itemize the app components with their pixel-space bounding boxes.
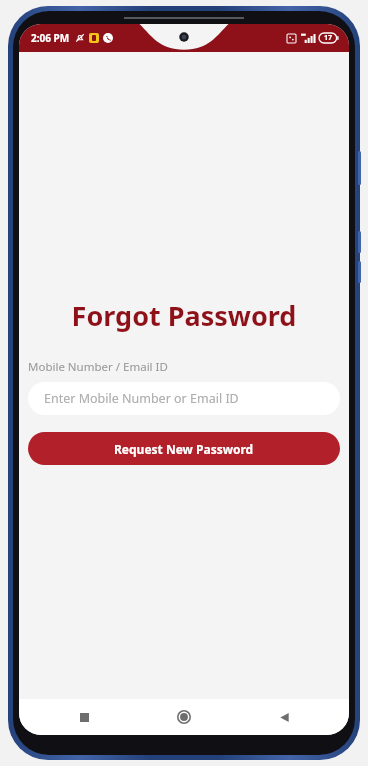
staticText: 2:06 PM xyxy=(31,31,70,45)
button[interactable]: Enter Mobile Number or Email ID xyxy=(28,382,340,415)
staticText: Request New Password xyxy=(114,441,254,457)
button[interactable]: Back xyxy=(267,700,301,734)
button[interactable]: Home xyxy=(167,700,201,734)
staticText: Enter Mobile Number or Email ID xyxy=(44,390,239,407)
button[interactable]: Recent apps xyxy=(67,700,101,734)
button[interactable]: Request New Password xyxy=(28,432,340,465)
staticText: Forgot Password xyxy=(28,297,340,334)
staticText: 17 xyxy=(324,33,333,43)
staticText: Mobile Number / Email ID xyxy=(28,359,168,375)
